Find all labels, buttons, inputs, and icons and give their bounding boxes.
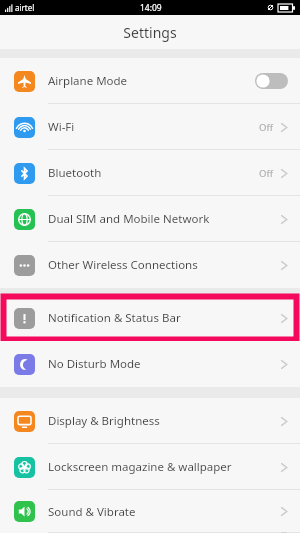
staticText: Dual SIM and Mobile Network <box>48 211 210 227</box>
button[interactable]: Bluetooth <box>0 150 300 196</box>
staticText: Sound & Vibrate <box>48 504 136 520</box>
staticText: Notification & Status Bar <box>48 310 181 326</box>
staticText: Airplane Mode <box>48 73 128 89</box>
button[interactable]: Notification & Status Bar <box>0 295 300 341</box>
staticText: airtel <box>15 2 35 13</box>
button[interactable]: Other Wireless Connections <box>0 242 300 288</box>
staticText: Other Wireless Connections <box>48 257 198 273</box>
button[interactable]: No Disturb Mode <box>0 341 300 387</box>
staticText: Wi-Fi <box>48 119 75 135</box>
staticText: Settings <box>123 23 177 42</box>
staticText: Bluetooth <box>48 165 102 181</box>
staticText: Lockscreen magazine & wallpaper <box>48 459 232 475</box>
staticText: 14:09 <box>140 2 162 14</box>
staticText: Off <box>259 167 273 180</box>
button[interactable]: Sound & Vibrate <box>0 490 300 533</box>
button[interactable]: Dual SIM and Mobile Network <box>0 196 300 242</box>
staticText: No Disturb Mode <box>48 356 141 372</box>
button[interactable]: Wi-Fi <box>0 104 300 150</box>
button[interactable]: Lockscreen magazine & wallpaper <box>0 444 300 490</box>
staticText: Display & Brightness <box>48 413 160 429</box>
button[interactable]: Airplane Mode <box>0 58 300 104</box>
button[interactable]: Display & Brightness <box>0 398 300 444</box>
staticText: Off <box>259 121 273 134</box>
